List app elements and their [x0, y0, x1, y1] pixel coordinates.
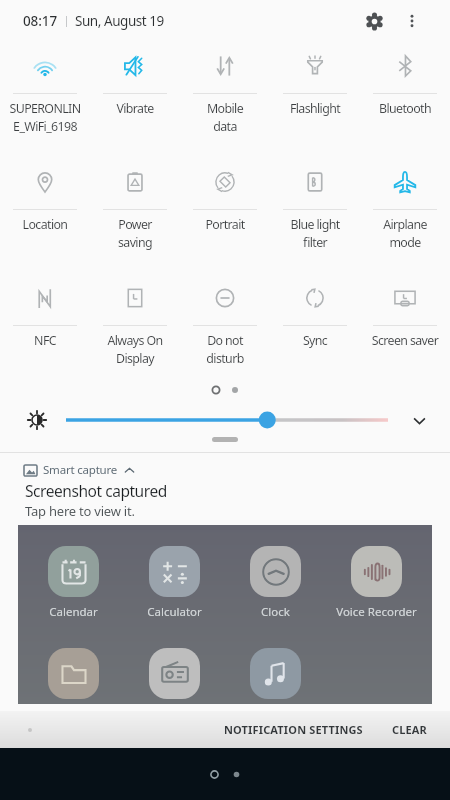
staticText: Sync	[270, 332, 360, 349]
staticText: Location	[0, 216, 90, 233]
staticText: Smart capture	[43, 462, 118, 478]
button[interactable]: Location	[0, 158, 90, 274]
button[interactable]: Airplane mode	[360, 158, 450, 274]
staticText: Clock	[261, 604, 290, 620]
button[interactable]: NFC	[0, 274, 90, 390]
button[interactable]: Portrait	[180, 158, 270, 274]
button[interactable]: SUPERONLIN E_WiFi_6198	[0, 42, 90, 158]
staticText: NFC	[0, 332, 90, 349]
button[interactable]: More options	[396, 5, 428, 37]
staticText: CLEAR	[392, 722, 427, 737]
staticText: Do not disturb	[180, 332, 270, 367]
button[interactable]: Sync	[270, 274, 360, 390]
button[interactable]: Flashlight	[270, 42, 360, 158]
button[interactable]: Do not disturb	[180, 274, 270, 390]
staticText: Sun, August 19	[75, 12, 164, 30]
staticText: Blue light filter	[270, 216, 360, 251]
staticText: Screenshot captured	[25, 480, 167, 501]
button[interactable]: Expand brightness	[406, 407, 432, 433]
staticText: Flashlight	[270, 100, 360, 117]
staticText: Power saving	[90, 216, 180, 251]
staticText: 08:17	[23, 12, 58, 30]
staticText: Airplane mode	[360, 216, 450, 251]
staticText: Bluetooth	[360, 100, 450, 117]
button[interactable]: Blue light filter	[270, 158, 360, 274]
staticText: Portrait	[180, 216, 270, 233]
button[interactable]: NOTIFICATION SETTINGS	[214, 714, 373, 745]
staticText: SUPERONLIN E_WiFi_6198	[0, 100, 90, 135]
button[interactable]: Mobile data	[180, 42, 270, 158]
button[interactable]: Always On Display	[90, 274, 180, 390]
staticText: Tap here to view it.	[25, 502, 135, 520]
button[interactable]: Power saving	[90, 158, 180, 274]
button[interactable]: CLEAR	[382, 714, 437, 745]
staticText: NOTIFICATION SETTINGS	[224, 722, 363, 737]
button[interactable]: Bluetooth	[360, 42, 450, 158]
staticText: Calculator	[147, 604, 202, 620]
button[interactable]: Settings	[356, 3, 392, 39]
staticText: Vibrate	[90, 100, 180, 117]
staticText: Calendar	[49, 604, 98, 620]
staticText: Screen saver	[360, 332, 450, 349]
button[interactable]: Vibrate	[90, 42, 180, 158]
staticText: Voice Recorder	[336, 604, 417, 620]
button[interactable]: Screen saver	[360, 274, 450, 390]
staticText: Always On Display	[90, 332, 180, 367]
staticText: Mobile data	[180, 100, 270, 135]
